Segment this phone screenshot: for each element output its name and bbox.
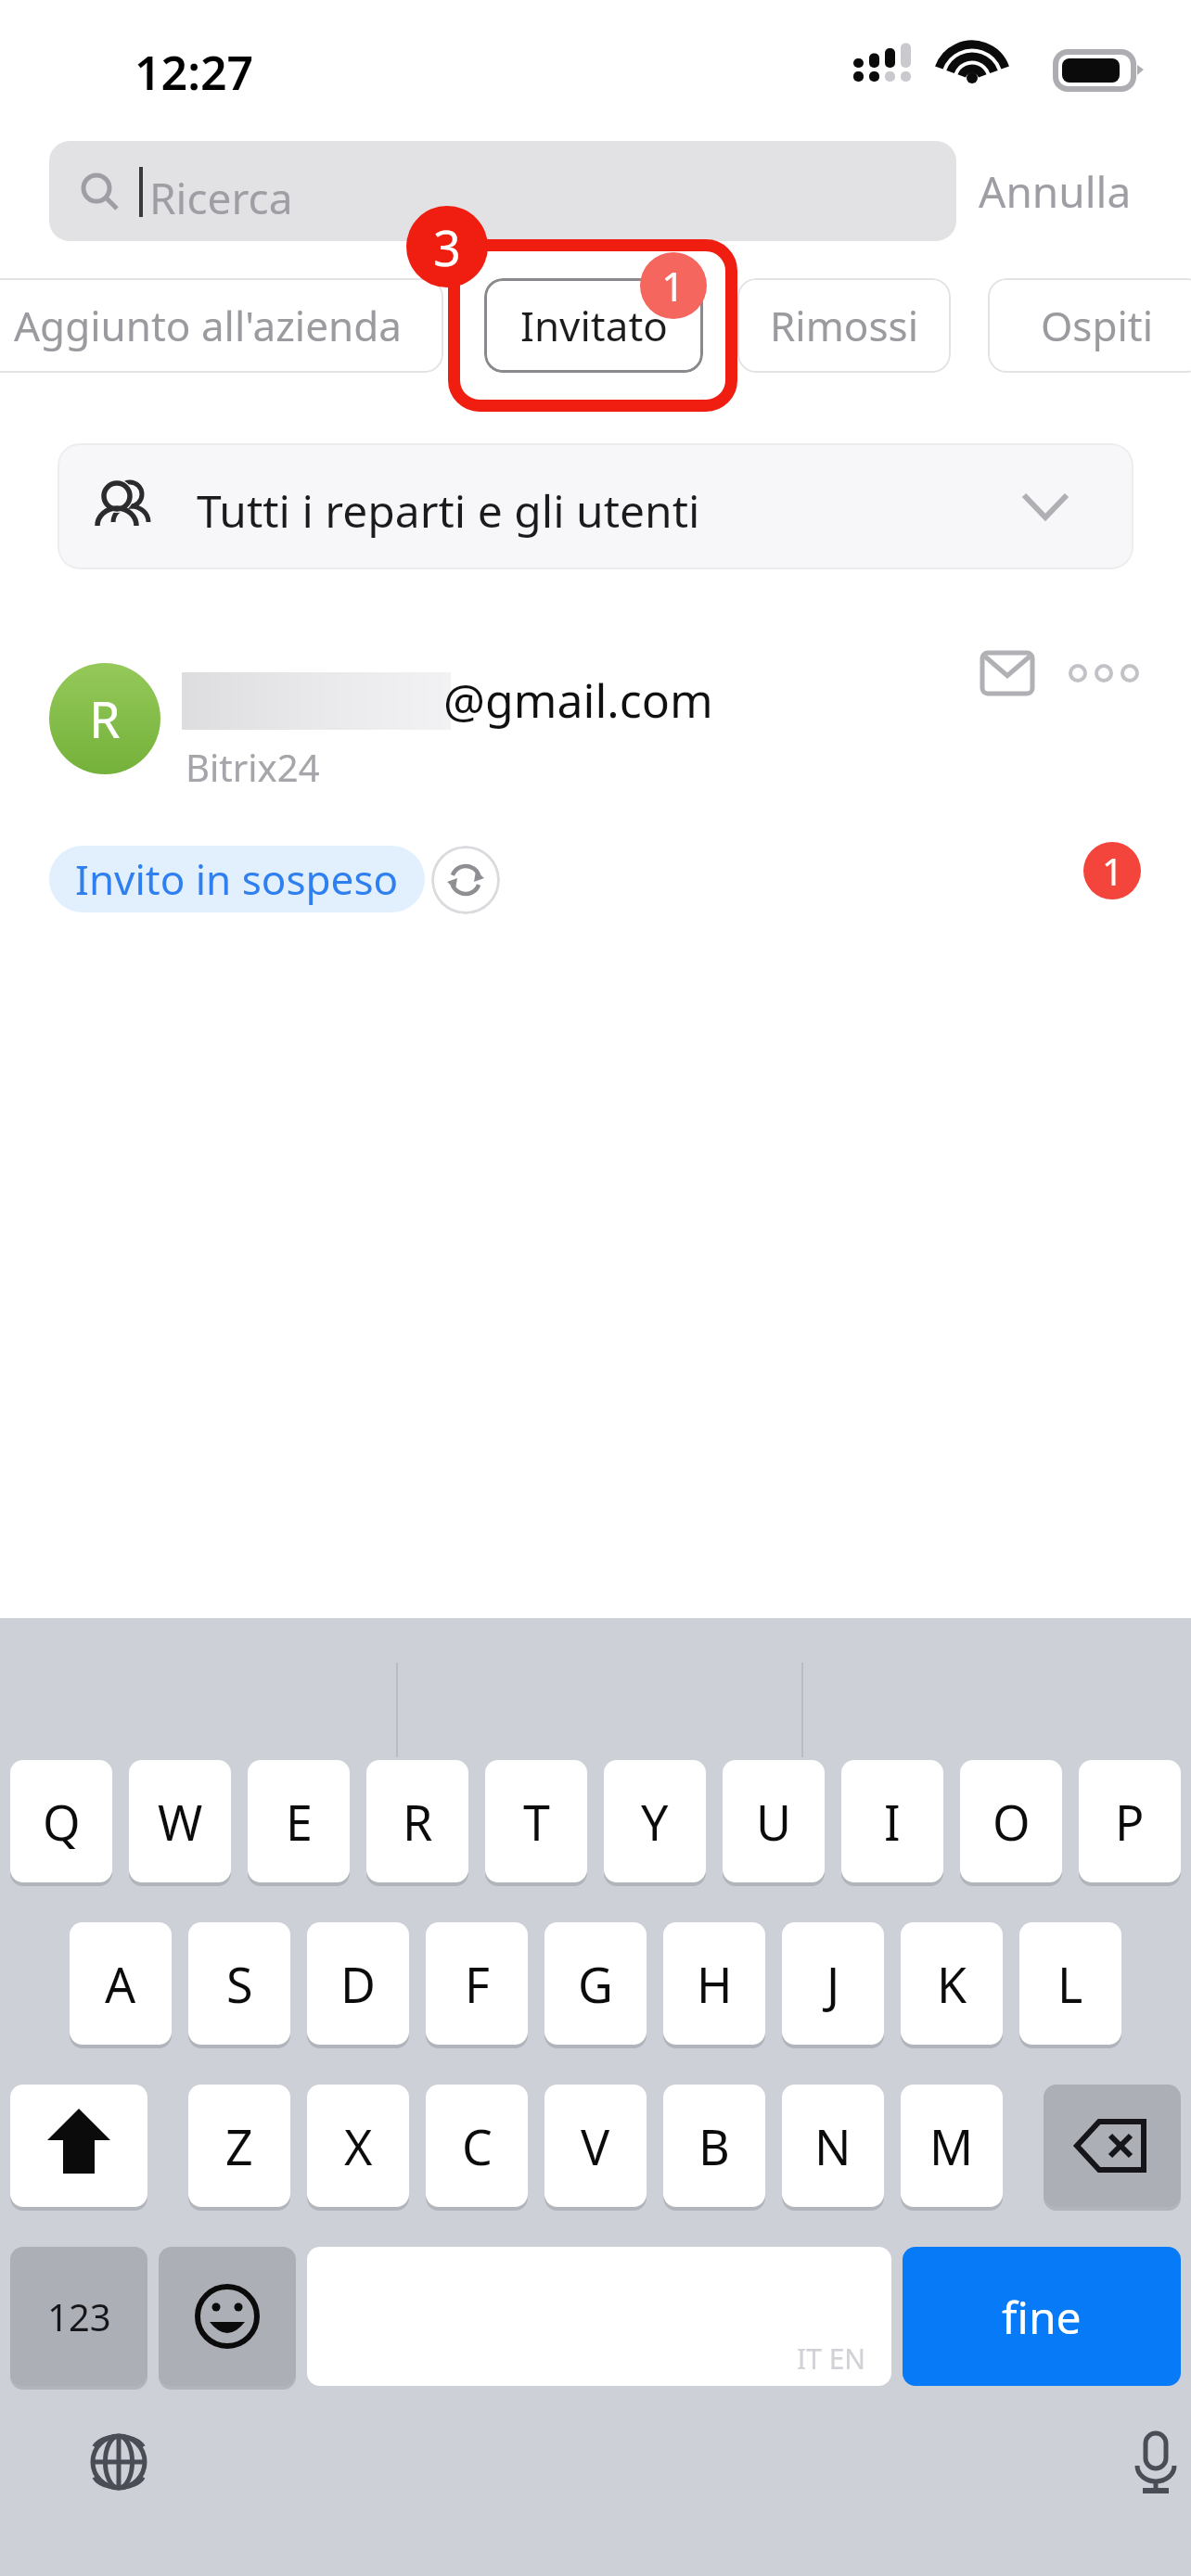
button[interactable]: P [1079,1760,1181,1882]
staticText: Invito in sospeso [75,851,399,907]
button[interactable]: Y [604,1760,706,1882]
button[interactable]: R [0,612,1191,797]
staticText: M [929,2113,974,2179]
button[interactable]: V [544,2085,647,2207]
staticText: R [403,1789,433,1855]
button[interactable]: Spazio [307,2247,891,2386]
staticText: K [937,1951,967,2017]
staticText: T [523,1789,550,1855]
button[interactable]: S [188,1922,290,2045]
staticText: H [697,1951,733,2017]
button[interactable] [10,2247,147,2386]
staticText: L [1057,1951,1083,2017]
staticText: IT EN [797,2340,866,2378]
staticText: S [226,1951,253,2017]
button[interactable]: D [307,1922,409,2045]
button[interactable]: Altre opzioni [1057,631,1150,716]
button[interactable]: Tutti i reparti e gli utenti [58,443,1133,569]
staticText: I [884,1789,901,1855]
button[interactable]: I [841,1760,943,1882]
staticText: fine [1002,2287,1082,2347]
button[interactable]: Invito in sospeso [49,846,425,912]
button[interactable]: H [663,1922,765,2045]
staticText: Z [225,2113,253,2179]
button[interactable]: Rimossi [737,278,951,373]
staticText: Ricerca [149,169,293,227]
button[interactable]: M [901,2085,1003,2207]
staticText: J [826,1951,840,2017]
staticText: O [992,1789,1031,1855]
staticText: D [340,1951,376,2017]
button[interactable]: Ricerca [49,141,956,241]
button[interactable]: G [544,1922,647,2045]
button[interactable]: Cambia lingua [72,2416,165,2508]
button[interactable]: Dettatura [1109,2416,1191,2508]
button[interactable]: K [901,1922,1003,2045]
staticText: 1 [661,258,685,313]
button[interactable]: E [248,1760,350,1882]
button[interactable]: Q [10,1760,112,1882]
staticText: X [344,2113,373,2179]
staticText: U [756,1789,792,1855]
button[interactable] [159,2247,296,2386]
button[interactable]: L [1019,1922,1121,2045]
button[interactable]: A [70,1922,172,2045]
staticText: Bitrix24 [186,742,320,792]
button[interactable]: Invia email [965,631,1050,716]
staticText: R [89,684,121,753]
button[interactable]: R [366,1760,468,1882]
staticText: Y [641,1789,669,1855]
staticText: Tutti i reparti e gli utenti [197,480,700,541]
staticText: Q [43,1789,81,1855]
button[interactable]: Rinvia invito [431,846,500,914]
button[interactable] [1044,2085,1181,2207]
button[interactable]: W [129,1760,231,1882]
staticText: W [158,1789,203,1855]
button[interactable]: 123 [10,2247,147,2386]
button[interactable]: Aggiunto all'azienda [0,278,443,373]
staticText: G [578,1951,613,2017]
staticText: Annulla [979,162,1132,221]
button[interactable]: F [426,1922,528,2045]
staticText: N [814,2113,852,2179]
staticText: A [105,1951,136,2017]
staticText: Aggiunto all'azienda [14,298,402,353]
button[interactable]: Ospiti [988,278,1191,373]
staticText: Rimossi [770,298,918,353]
button[interactable]: C [426,2085,528,2207]
staticText: B [698,2113,730,2179]
button[interactable]: O [960,1760,1062,1882]
staticText: 3 [433,214,461,280]
staticText: 1 [1102,846,1123,896]
button[interactable]: N [782,2085,884,2207]
staticText: @gmail.com [443,669,713,732]
button[interactable]: J [782,1922,884,2045]
button[interactable]: Invitato [484,278,703,373]
button[interactable]: Annulla [979,141,1164,241]
button[interactable]: B [663,2085,765,2207]
staticText: Ospiti [1041,298,1154,353]
button[interactable]: Z [188,2085,290,2207]
button[interactable]: U [723,1760,825,1882]
staticText: 123 [47,2291,111,2341]
button[interactable] [10,2085,147,2207]
button[interactable]: fine [903,2247,1181,2386]
staticText: E [286,1789,313,1855]
button[interactable]: T [485,1760,587,1882]
staticText: 12:27 [134,41,254,104]
staticText: F [465,1951,490,2017]
button[interactable]: X [307,2085,409,2207]
staticText: C [462,2113,493,2179]
staticText: V [581,2113,610,2179]
staticText: P [1115,1789,1145,1855]
staticText: Invitato [520,298,668,353]
